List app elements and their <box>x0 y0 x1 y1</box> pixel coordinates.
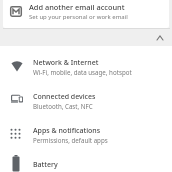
staticText: Bluetooth, Cast, NFC <box>33 102 93 110</box>
button[interactable]: Connected devices <box>0 80 172 114</box>
button[interactable]: Battery <box>0 148 172 172</box>
button[interactable]: Add another email account <box>3 0 169 28</box>
staticText: Battery <box>33 160 58 170</box>
button[interactable]: Network & Internet <box>0 46 172 80</box>
staticText: Connected devices <box>33 92 96 102</box>
button[interactable]: Apps & notifications <box>0 114 172 148</box>
staticText: Wi-Fi, mobile, data usage, hotspot <box>33 68 132 76</box>
staticText: Add another email account <box>29 2 125 12</box>
staticText: Network & Internet <box>33 58 99 68</box>
staticText: Apps & notifications <box>33 126 101 136</box>
staticText: Set up your personal or work email <box>29 13 128 21</box>
staticText: Permissions, default apps <box>33 136 108 144</box>
button[interactable] <box>153 31 167 44</box>
